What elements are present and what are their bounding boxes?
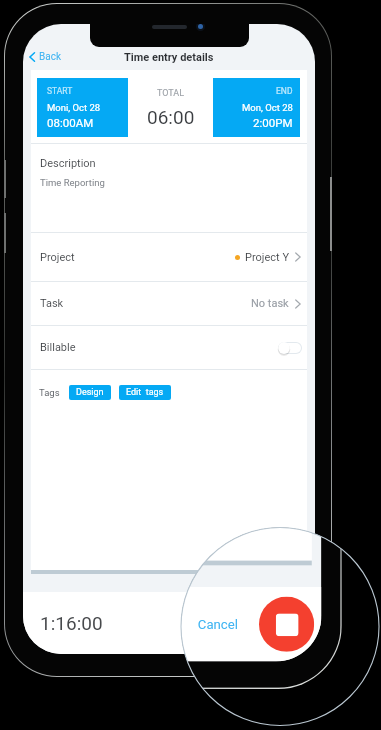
button[interactable]: START	[0, 0, 97, 41]
staticText: Project	[40, 251, 75, 264]
staticText: Project Y	[245, 251, 289, 264]
staticText: 06:00	[120, 4, 177, 30]
staticText: Project	[0, 178, 33, 193]
staticText: No task	[251, 297, 289, 310]
staticText: 08:00AM	[47, 116, 94, 129]
button[interactable]: Edit tags	[119, 385, 171, 400]
button[interactable]: Cancel	[207, 609, 251, 638]
staticText: Billable	[40, 341, 76, 354]
staticText: Moni, Oct 28	[47, 102, 101, 113]
button[interactable]: Billable switch, off	[277, 287, 306, 301]
button[interactable]: Design	[26, 339, 77, 357]
button[interactable]: Task	[0, 215, 312, 267]
staticText: Mon, Oct 28	[234, 0, 295, 12]
button[interactable]: Billable	[31, 326, 307, 369]
staticText: 1:16:00	[0, 611, 67, 637]
staticText: START	[47, 86, 73, 96]
staticText: Back	[39, 51, 61, 63]
button[interactable]: Billable switch, off	[278, 342, 302, 354]
staticText: Time Reporting	[0, 89, 69, 102]
staticText: Moni, Oct 28	[0, 0, 65, 12]
button[interactable]: END	[213, 78, 300, 137]
staticText: TOTAL	[157, 88, 185, 99]
staticText: Design	[76, 387, 104, 398]
staticText: Mon, Oct 28	[242, 102, 293, 113]
staticText: Edit tags	[126, 387, 164, 398]
button[interactable]: Cancel	[192, 607, 245, 642]
button[interactable]: Project	[0, 156, 312, 214]
staticText: 06:00	[147, 106, 195, 128]
staticText: Time entry details	[124, 51, 214, 64]
staticText: Description	[0, 65, 59, 81]
staticText: Task	[0, 233, 20, 249]
button[interactable]: Description	[0, 49, 312, 155]
staticText: 08:00AM	[0, 16, 56, 31]
staticText: 2:00PM	[253, 116, 293, 129]
staticText: Tags	[39, 387, 60, 398]
staticText: 2:00PM	[247, 16, 295, 31]
button[interactable]: Description	[31, 144, 307, 232]
staticText: Cancel	[212, 617, 246, 630]
staticText: Task	[40, 297, 64, 310]
button[interactable]: Design	[69, 385, 111, 400]
staticText: Description	[40, 157, 96, 170]
staticText: Design	[35, 341, 68, 354]
button[interactable]: Back	[27, 46, 63, 68]
button[interactable]: Billable	[0, 268, 312, 319]
staticText: Time Reporting	[40, 177, 105, 188]
staticText: Cancel	[198, 617, 239, 633]
staticText: END	[276, 86, 293, 96]
staticText: Billable	[0, 286, 35, 301]
button[interactable]: START	[37, 78, 128, 137]
staticText: Tags	[0, 341, 15, 354]
button[interactable]: Stop timer	[259, 597, 314, 652]
button[interactable]: Project	[31, 233, 307, 281]
staticText: 1:16:00	[40, 612, 103, 634]
button[interactable]: END	[199, 0, 303, 41]
button[interactable]: Task	[31, 282, 307, 325]
button[interactable]: Stop timer	[263, 600, 309, 646]
